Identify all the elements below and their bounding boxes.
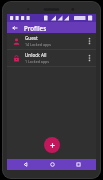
button[interactable]: More options: [85, 51, 93, 65]
button[interactable]: Unlock All: [7, 50, 96, 66]
button[interactable]: More options: [85, 34, 93, 48]
button[interactable]: Back: [17, 159, 33, 170]
button[interactable]: Home: [44, 159, 60, 170]
button[interactable]: Add profile: [44, 137, 60, 153]
staticText: Profiles: [24, 24, 47, 32]
staticText: Guest: [25, 35, 38, 41]
staticText: Unlock All: [25, 52, 47, 58]
staticText: 14 Locked apps: [25, 42, 52, 47]
staticText: 1 Locked apps: [25, 59, 50, 64]
button[interactable]: Back: [10, 23, 20, 33]
button[interactable]: Guest: [7, 33, 96, 49]
button[interactable]: Recent apps: [70, 159, 86, 170]
